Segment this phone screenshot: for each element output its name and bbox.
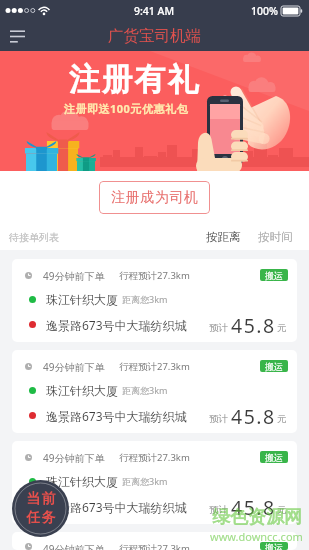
staticText: www.downcc.com	[210, 529, 303, 544]
staticText: 搬运	[265, 270, 283, 281]
staticText: 珠江针织大厦	[46, 383, 118, 397]
staticText: 预计	[209, 413, 228, 425]
staticText: 距离您3km	[122, 475, 168, 487]
staticText: 逸景路673号中大瑞纺织城	[46, 317, 187, 333]
staticText: 元	[277, 504, 287, 516]
staticText: 珠江针织大厦	[46, 292, 118, 306]
button[interactable]: Menu	[4, 23, 30, 49]
staticText: 49分钟前下单	[43, 542, 105, 550]
staticText: 注册有礼	[69, 60, 201, 99]
staticText: 逸景路673号中大瑞纺织城	[46, 499, 187, 515]
button[interactable]: 按时间	[254, 226, 297, 248]
staticText: 注册成为司机	[111, 189, 198, 207]
staticText: 距离您3km	[122, 384, 168, 396]
button[interactable]: 49分钟前下单	[12, 259, 297, 342]
staticText: 元	[277, 322, 287, 334]
staticText: 元	[277, 413, 287, 425]
staticText: 预计	[209, 322, 228, 334]
staticText: 行程预计27.3km	[119, 451, 190, 463]
button[interactable]: 按距离	[202, 226, 245, 248]
button[interactable]: 注册成为司机	[99, 181, 210, 214]
button[interactable]: 当前	[12, 480, 69, 537]
staticText: 预计	[209, 504, 228, 516]
staticText: 行程预计27.3km	[119, 269, 190, 281]
staticText: 9:41 AM	[134, 4, 175, 18]
staticText: 49分钟前下单	[43, 269, 105, 281]
staticText: 待接单列表	[9, 231, 59, 244]
staticText: 行程预计27.3km	[119, 542, 190, 550]
staticText: 当前	[26, 490, 56, 508]
staticText: 搬运	[265, 361, 283, 372]
staticText: 任务	[26, 509, 56, 527]
button[interactable]: 49分钟前下单	[12, 532, 297, 550]
button[interactable]: 49分钟前下单	[12, 350, 297, 433]
staticText: 搬运	[265, 452, 283, 463]
staticText: 绿色资源网	[212, 506, 302, 529]
staticText: 100%	[251, 4, 278, 18]
button[interactable]: 49分钟前下单	[12, 441, 297, 524]
staticText: 行程预计27.3km	[119, 360, 190, 372]
staticText: 45.8	[231, 403, 276, 428]
staticText: 逸景路673号中大瑞纺织城	[46, 408, 187, 424]
staticText: 49分钟前下单	[43, 360, 105, 372]
staticText: 45.8	[231, 312, 276, 337]
staticText: 45.8	[231, 494, 276, 519]
staticText: 注册即送100元优惠礼包	[64, 101, 188, 116]
staticText: 搬运	[265, 542, 283, 550]
staticText: 49分钟前下单	[43, 451, 105, 463]
staticText: 按时间	[258, 230, 293, 244]
staticText: 珠江针织大厦	[46, 474, 118, 488]
staticText: 距离您3km	[122, 293, 168, 305]
staticText: 按距离	[206, 230, 241, 244]
staticText: 广货宝司机端	[108, 26, 201, 46]
